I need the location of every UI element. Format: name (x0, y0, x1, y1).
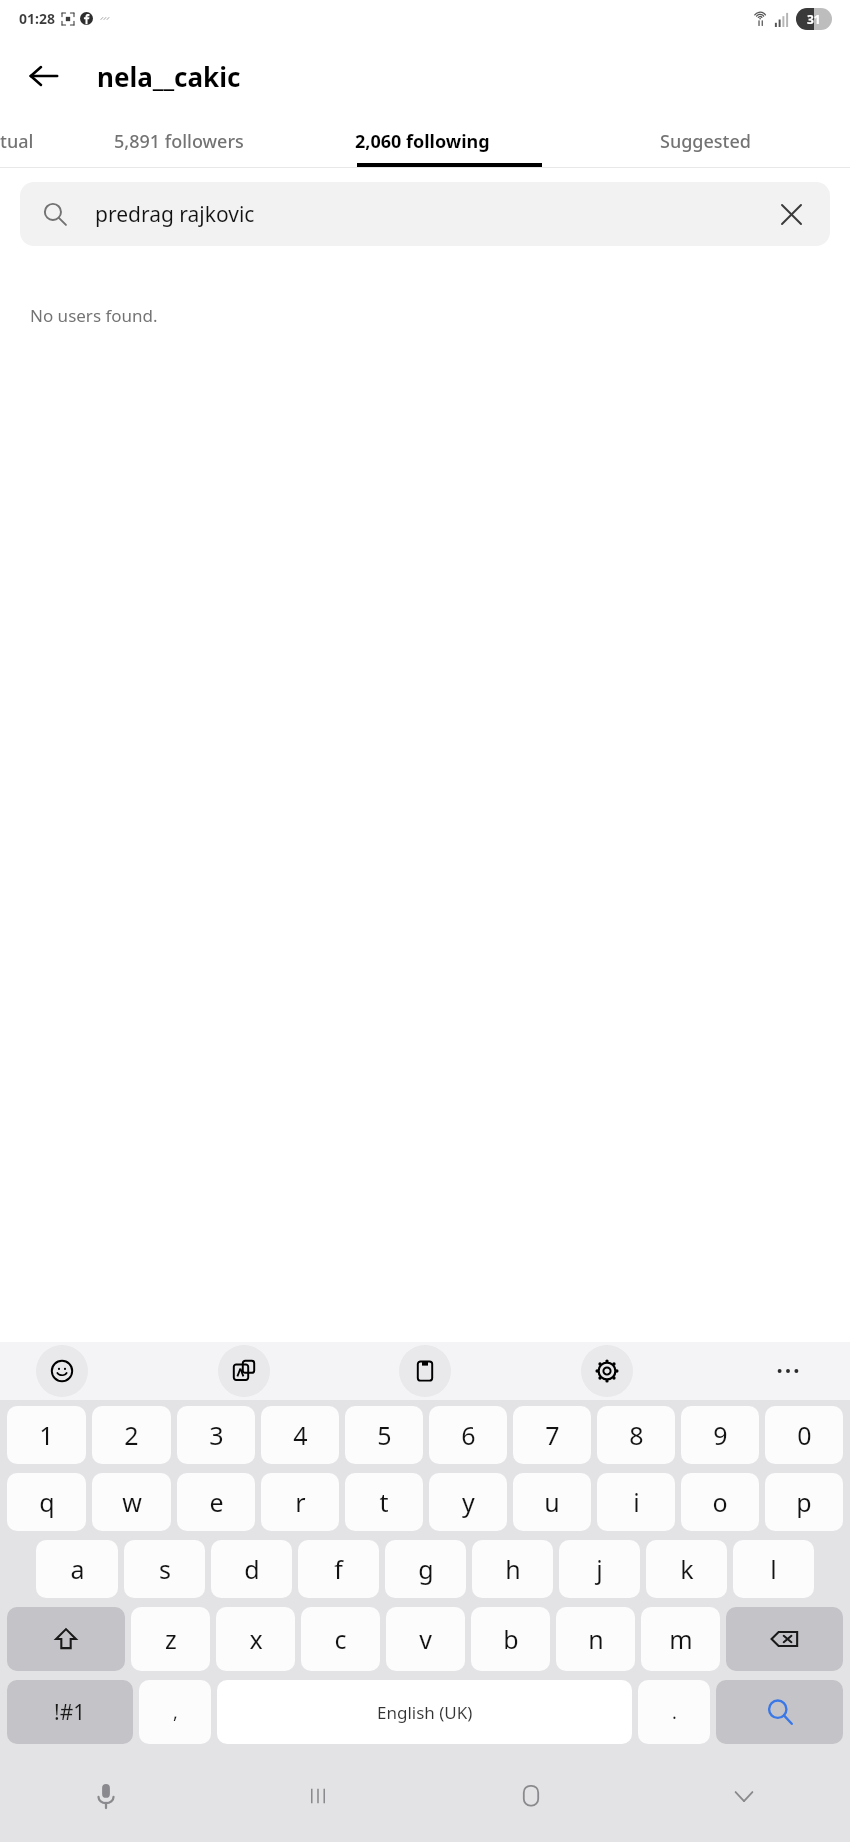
button[interactable]: Search (716, 1680, 843, 1744)
button[interactable]: 9 (681, 1406, 759, 1464)
staticText: o (712, 1485, 728, 1519)
button[interactable]: 2 (92, 1406, 171, 1464)
button[interactable]: tual (0, 129, 34, 154)
button[interactable]: t (345, 1473, 423, 1531)
button[interactable]: r (261, 1473, 339, 1531)
staticText: x (249, 1622, 263, 1656)
staticText: f (334, 1552, 343, 1586)
staticText: m (669, 1622, 693, 1656)
staticText: s (159, 1552, 171, 1586)
button[interactable]: y (429, 1473, 507, 1531)
button[interactable]: Recents (212, 1750, 424, 1842)
button[interactable]: n (556, 1607, 635, 1671)
staticText: a (70, 1552, 85, 1586)
staticText: 2,060 following (355, 129, 490, 154)
button[interactable]: 5 (345, 1406, 423, 1464)
button[interactable]: predrag rajkovic (20, 182, 830, 246)
button[interactable]: , (139, 1680, 211, 1744)
staticText: 31 (807, 11, 821, 27)
button[interactable]: Shift (7, 1607, 125, 1671)
staticText: No users found. (30, 304, 158, 327)
button[interactable]: 0 (765, 1406, 843, 1464)
staticText: v (419, 1622, 432, 1656)
button[interactable]: o (681, 1473, 759, 1531)
staticText: g (418, 1552, 434, 1586)
button[interactable]: !#1 (7, 1680, 133, 1744)
button[interactable]: 3 (177, 1406, 255, 1464)
staticText: k (680, 1552, 694, 1586)
button[interactable]: More (762, 1345, 814, 1397)
button[interactable]: Translate (218, 1345, 270, 1397)
button[interactable]: i (597, 1473, 675, 1531)
button[interactable]: h (472, 1540, 553, 1598)
staticText: b (503, 1622, 519, 1656)
button[interactable]: Clear (774, 197, 808, 231)
button[interactable]: s (124, 1540, 205, 1598)
staticText: , (173, 1700, 178, 1725)
staticText: h (505, 1552, 521, 1586)
staticText: 6 (461, 1418, 476, 1452)
button[interactable]: l (733, 1540, 814, 1598)
button[interactable]: f (298, 1540, 379, 1598)
button[interactable]: e (177, 1473, 255, 1531)
staticText: 2 (124, 1418, 139, 1452)
staticText: 4 (293, 1418, 308, 1452)
staticText: j (596, 1552, 603, 1586)
staticText: d (244, 1552, 260, 1586)
staticText: 8 (629, 1418, 644, 1452)
button[interactable]: c (301, 1607, 380, 1671)
button[interactable]: Settings (581, 1345, 633, 1397)
button[interactable]: p (765, 1473, 843, 1531)
button[interactable]: . (638, 1680, 710, 1744)
button[interactable]: a (36, 1540, 118, 1598)
button[interactable]: k (646, 1540, 727, 1598)
staticText: n (588, 1622, 604, 1656)
button[interactable]: 6 (429, 1406, 507, 1464)
button[interactable]: b (471, 1607, 550, 1671)
button[interactable]: Back (20, 52, 68, 100)
button[interactable]: 2,060 following (355, 129, 490, 154)
staticText: w (122, 1485, 142, 1519)
staticText: 1 (39, 1418, 54, 1452)
button[interactable]: g (385, 1540, 466, 1598)
button[interactable]: Backspace (726, 1607, 843, 1671)
staticText: predrag rajkovic (95, 200, 255, 229)
staticText: i (633, 1485, 640, 1519)
staticText: c (334, 1622, 347, 1656)
button[interactable]: x (216, 1607, 295, 1671)
button[interactable]: z (131, 1607, 210, 1671)
button[interactable]: m (641, 1607, 720, 1671)
button[interactable]: English (UK) (217, 1680, 632, 1744)
staticText: e (209, 1485, 224, 1519)
button[interactable]: q (7, 1473, 86, 1531)
button[interactable]: 8 (597, 1406, 675, 1464)
button[interactable]: Emoji (36, 1345, 88, 1397)
staticText: 0 (797, 1418, 812, 1452)
button[interactable]: 5,891 followers (114, 129, 244, 154)
staticText: l (770, 1552, 777, 1586)
staticText: 3 (209, 1418, 224, 1452)
staticText: !#1 (54, 1698, 86, 1727)
staticText: English (UK) (377, 1701, 473, 1724)
button[interactable]: 4 (261, 1406, 339, 1464)
staticText: 5 (377, 1418, 392, 1452)
button[interactable]: j (559, 1540, 640, 1598)
button[interactable]: Hide keyboard (637, 1750, 850, 1842)
staticText: 7 (545, 1418, 560, 1452)
button[interactable]: d (211, 1540, 292, 1598)
staticText: y (462, 1485, 475, 1519)
button[interactable]: v (386, 1607, 465, 1671)
button[interactable]: Suggested (660, 129, 751, 154)
staticText: u (544, 1485, 560, 1519)
button[interactable]: w (92, 1473, 171, 1531)
button[interactable]: u (513, 1473, 591, 1531)
staticText: p (796, 1485, 812, 1519)
button[interactable]: 7 (513, 1406, 591, 1464)
button[interactable]: Clipboard (399, 1345, 451, 1397)
button[interactable]: Home (424, 1750, 637, 1842)
staticText: z (165, 1622, 177, 1656)
staticText: q (39, 1485, 55, 1519)
button[interactable]: 1 (7, 1406, 86, 1464)
staticText: . (672, 1700, 677, 1725)
button[interactable]: Voice input (0, 1750, 212, 1842)
